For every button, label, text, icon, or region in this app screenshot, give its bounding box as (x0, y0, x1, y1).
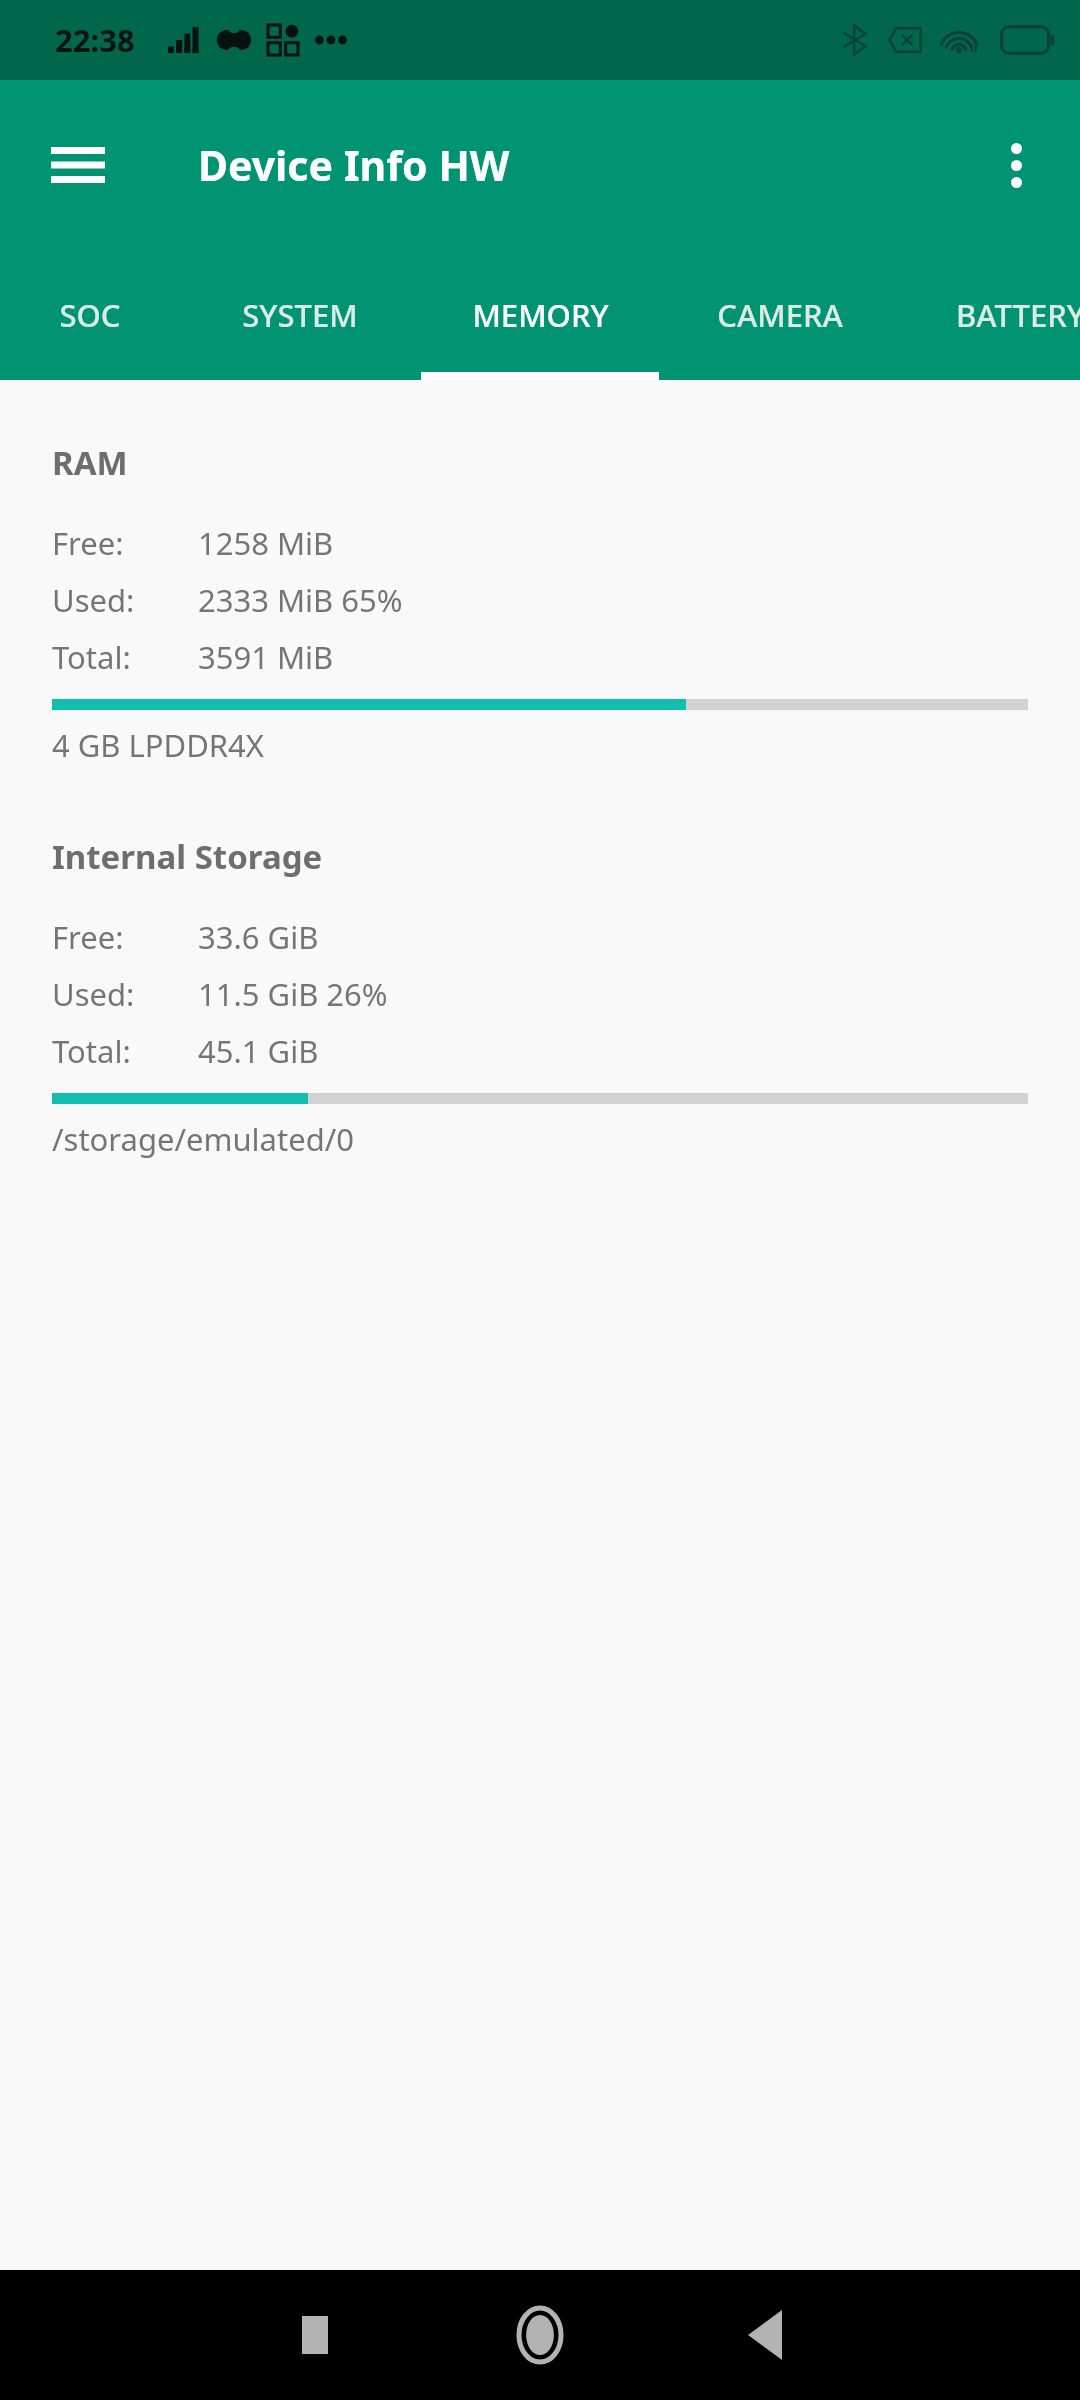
staticText: 11.5 GiB 26% (198, 973, 388, 1015)
button[interactable]: Back (715, 2285, 815, 2385)
button[interactable]: SOC (0, 250, 180, 380)
staticText: /storage/emulated/0 (52, 1118, 355, 1160)
button[interactable]: Open navigation drawer (26, 113, 130, 217)
staticText: SOC (59, 294, 121, 336)
staticText: 45.1 GiB (198, 1030, 319, 1072)
staticText: 4 GB LPDDR4X (52, 724, 265, 766)
staticText: 33.6 GiB (198, 916, 319, 958)
staticText: 22:38 (55, 19, 135, 61)
staticText: MEMORY (472, 294, 609, 336)
staticText: Free: (52, 522, 198, 564)
staticText: Internal Storage (52, 834, 323, 879)
staticText: Device Info HW (198, 137, 510, 193)
button[interactable]: Recent apps (265, 2285, 365, 2385)
staticText: CAMERA (717, 294, 843, 336)
button[interactable]: CAMERA (660, 250, 900, 380)
button[interactable]: More options (966, 115, 1066, 215)
staticText: Used: (52, 973, 198, 1015)
button[interactable]: Home (490, 2285, 590, 2385)
staticText: BATTERY (956, 294, 1080, 336)
button[interactable]: SYSTEM (180, 250, 420, 380)
staticText: Total: (52, 636, 198, 678)
staticText: 2333 MiB 65% (198, 579, 403, 621)
button[interactable]: MEMORY (420, 250, 660, 380)
staticText: Used: (52, 579, 198, 621)
staticText: RAM (52, 440, 128, 485)
button[interactable]: BATTERY (900, 250, 1080, 380)
staticText: 1258 MiB (198, 522, 334, 564)
staticText: SYSTEM (242, 294, 358, 336)
staticText: Total: (52, 1030, 198, 1072)
staticText: Free: (52, 916, 198, 958)
staticText: 3591 MiB (198, 636, 334, 678)
